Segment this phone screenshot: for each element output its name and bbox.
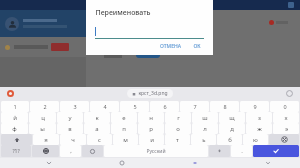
button[interactable]: крст_3d.png (127, 89, 173, 98)
button[interactable]: 6 (150, 101, 179, 112)
button[interactable]: к (84, 112, 110, 123)
staticText: 8 (223, 103, 227, 110)
staticText: ю (253, 136, 258, 144)
button[interactable]: Shift (1, 134, 32, 145)
button[interactable]: Settings (286, 90, 293, 97)
staticText: Переименовать (95, 8, 151, 18)
button[interactable]: з (246, 112, 272, 123)
staticText: е (122, 114, 126, 122)
staticText: ОК (193, 43, 201, 50)
button[interactable]: г (165, 112, 191, 123)
staticText: ы (40, 125, 45, 133)
button[interactable]: ь (191, 134, 216, 145)
staticText: г (177, 114, 180, 122)
staticText: ОТМЕНА (160, 43, 181, 50)
staticText: а (95, 125, 99, 133)
button[interactable]: м (113, 134, 138, 145)
button[interactable]: 9 (240, 101, 269, 112)
button[interactable]: , (60, 145, 81, 157)
button[interactable]: Hide keyboard (263, 158, 273, 168)
button[interactable]: Voice input (7, 90, 14, 97)
button[interactable]: ES File Explorer (136, 34, 160, 58)
staticText: т (176, 136, 179, 144)
staticText: ф (12, 125, 17, 133)
button[interactable]: р (138, 123, 164, 134)
staticText: , (70, 147, 72, 155)
button[interactable]: ч (60, 134, 86, 145)
button[interactable]: 7 (180, 101, 209, 112)
button[interactable]: щ (219, 112, 245, 123)
button[interactable]: ОТМЕНА (157, 41, 184, 52)
button[interactable]: Русский (104, 145, 208, 157)
staticText: н (149, 114, 153, 122)
button[interactable]: ю (243, 134, 268, 145)
staticText: ?1? (12, 148, 20, 155)
staticText: ш (202, 114, 208, 122)
button[interactable]: н (138, 112, 164, 123)
staticText: р (149, 125, 153, 133)
button[interactable]: д (219, 123, 245, 134)
staticText: 9 (253, 103, 257, 110)
staticText: 0 (283, 103, 287, 110)
staticText: 3 (73, 103, 77, 110)
staticText: я (44, 136, 48, 144)
button[interactable]: 5 (120, 101, 149, 112)
button[interactable]: Back (44, 158, 54, 168)
button[interactable]: и (139, 134, 164, 145)
button[interactable]: Emoji (82, 145, 103, 157)
button[interactable]: я (33, 134, 59, 145)
button[interactable]: х (273, 112, 299, 123)
button[interactable]: о (165, 123, 191, 134)
button[interactable] (5, 37, 81, 57)
button[interactable]: ц (29, 112, 56, 123)
button[interactable]: а (84, 123, 110, 134)
button[interactable]: ОК (190, 41, 204, 52)
button[interactable]: 4 (90, 101, 119, 112)
button[interactable]: у (57, 112, 83, 123)
button[interactable]: ш (192, 112, 218, 123)
button[interactable]: Home (117, 158, 127, 168)
staticText: щ (229, 114, 235, 122)
button[interactable]: 0 (270, 101, 299, 112)
staticText: 2 (43, 103, 47, 110)
button[interactable]: ф (1, 123, 28, 134)
staticText: Русский (146, 148, 166, 155)
staticText: д (230, 125, 234, 133)
staticText: в (68, 125, 72, 133)
button[interactable]: т (165, 134, 190, 145)
staticText: 1 (13, 103, 17, 110)
button[interactable]: Voice (209, 145, 230, 157)
button[interactable]: 3 (60, 101, 89, 112)
button[interactable]: э (273, 123, 299, 134)
button[interactable]: Backspace (269, 134, 299, 145)
staticText: й (13, 114, 17, 122)
button[interactable]: Enter (253, 145, 299, 157)
staticText: к (95, 114, 99, 122)
button[interactable]: 8 (210, 101, 239, 112)
button[interactable]: Recents (190, 158, 200, 168)
staticText: и (150, 136, 154, 144)
button[interactable]: с (87, 134, 112, 145)
button[interactable]: л (192, 123, 218, 134)
button[interactable]: е (111, 112, 137, 123)
button[interactable]: б (217, 134, 242, 145)
button[interactable]: ?1? (1, 145, 31, 157)
button[interactable]: п (111, 123, 137, 134)
button[interactable]: Change language (32, 145, 59, 157)
staticText: 4 (103, 103, 107, 110)
staticText: ж (257, 125, 262, 133)
staticText: у (68, 114, 72, 122)
staticText: . (241, 147, 243, 155)
button[interactable]: ж (246, 123, 272, 134)
button[interactable]: в (57, 123, 83, 134)
staticText: з (258, 114, 261, 122)
button[interactable]: й (1, 112, 28, 123)
staticText: х (284, 114, 288, 122)
staticText: ч (71, 136, 75, 144)
button[interactable]: Menu (288, 2, 294, 8)
staticText: ц (41, 114, 45, 122)
button[interactable]: 1 (1, 101, 29, 112)
button[interactable]: 2 (30, 101, 59, 112)
button[interactable]: ы (29, 123, 56, 134)
